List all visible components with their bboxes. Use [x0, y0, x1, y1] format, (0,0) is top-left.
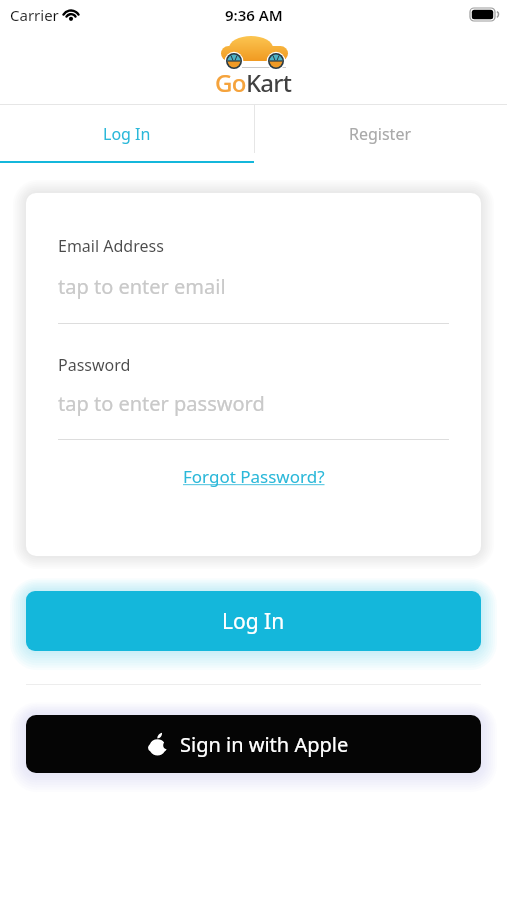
- button[interactable]: Register: [254, 105, 507, 163]
- staticText: Register: [349, 123, 412, 145]
- button[interactable]: Log In: [26, 591, 481, 651]
- staticText: Go: [215, 66, 246, 99]
- staticText: Log In: [222, 607, 285, 636]
- staticText: Log In: [103, 123, 151, 145]
- staticText: Carrier: [10, 5, 59, 25]
- button[interactable]: tap to enter email: [52, 267, 449, 323]
- staticText: Kart: [246, 66, 292, 99]
- button[interactable]: Sign in with Apple: [26, 715, 481, 773]
- staticText: Email Address: [58, 235, 164, 257]
- button[interactable]: Forgot Password?: [183, 465, 325, 488]
- button[interactable]: tap to enter password: [52, 384, 449, 439]
- staticText: 9:36 AM: [225, 5, 283, 25]
- staticText: Sign in with Apple: [180, 731, 349, 758]
- staticText: Forgot Password?: [183, 465, 325, 488]
- staticText: tap to enter password: [58, 390, 265, 417]
- staticText: tap to enter email: [58, 273, 226, 300]
- button[interactable]: Log In: [0, 105, 254, 163]
- staticText: Password: [58, 354, 131, 376]
